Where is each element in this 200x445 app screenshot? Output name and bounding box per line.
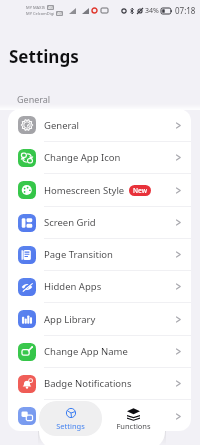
- button[interactable]: App Library: [8, 303, 191, 336]
- staticText: MY MAXIS: [26, 5, 46, 10]
- staticText: Functions: [116, 421, 151, 431]
- button[interactable]: Hidden Apps: [8, 271, 191, 303]
- button[interactable]: Badge Notifications: [8, 368, 191, 400]
- button[interactable]: Change App Icon: [8, 142, 191, 174]
- button[interactable]: Language: [8, 400, 191, 431]
- staticText: General: [17, 93, 51, 105]
- button[interactable]: Change App Name: [8, 336, 191, 368]
- staticText: Page Transition: [44, 248, 113, 261]
- button[interactable]: Screen Grid: [8, 207, 191, 239]
- staticText: General: [44, 119, 80, 132]
- button[interactable]: Functions: [102, 401, 165, 436]
- button[interactable]: Page Transition: [8, 239, 191, 271]
- staticText: Homescreen Style: [44, 184, 125, 197]
- staticText: App Library: [44, 313, 96, 326]
- button[interactable]: General: [8, 109, 191, 142]
- staticText: Settings: [9, 45, 79, 68]
- staticText: 07:18: [175, 5, 196, 16]
- button[interactable]: Homescreen Style: [8, 174, 191, 207]
- staticText: New: [133, 186, 147, 195]
- staticText: Badge Notifications: [44, 377, 132, 390]
- button[interactable]: Settings: [39, 401, 102, 436]
- staticText: MY CelcomDigi: [26, 11, 55, 16]
- staticText: Language: [44, 410, 89, 423]
- staticText: 4G: [48, 5, 53, 10]
- staticText: Change App Icon: [44, 151, 121, 164]
- staticText: Settings: [56, 421, 85, 431]
- staticText: Hidden Apps: [44, 280, 102, 293]
- staticText: Change App Name: [44, 345, 128, 358]
- staticText: 4G: [57, 11, 62, 16]
- staticText: 34%: [145, 6, 159, 16]
- staticText: Screen Grid: [44, 216, 96, 229]
